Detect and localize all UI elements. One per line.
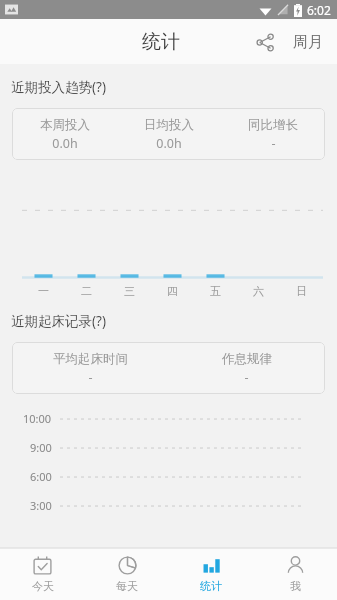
staticText: 六: [253, 284, 264, 298]
staticText: 平均起床时间: [53, 351, 128, 367]
staticText: 二: [81, 284, 92, 298]
staticText: 6:00: [30, 469, 52, 484]
staticText: 同比增长: [248, 117, 298, 133]
staticText: 三: [124, 284, 135, 298]
staticText: -: [271, 135, 276, 152]
staticText: -: [88, 369, 93, 386]
staticText: 本周投入: [40, 117, 90, 133]
button[interactable]: Share: [247, 24, 283, 60]
staticText: 9:00: [30, 440, 52, 455]
staticText: 每天: [116, 579, 138, 593]
button[interactable]: 统计: [169, 548, 253, 600]
staticText: 作息规律: [222, 351, 272, 367]
staticText: 6:02: [307, 2, 331, 18]
staticText: 0.0h: [156, 135, 182, 152]
button[interactable]: 本周投入: [12, 108, 325, 160]
staticText: 0.0h: [52, 135, 78, 152]
staticText: 五: [210, 284, 221, 298]
button[interactable]: 今天: [0, 548, 85, 600]
staticText: 四: [167, 284, 178, 298]
button[interactable]: 周月: [287, 25, 329, 60]
staticText: 10:00: [23, 411, 52, 426]
staticText: -: [244, 369, 249, 386]
staticText: 统计: [200, 579, 222, 593]
button[interactable]: 每天: [85, 548, 169, 600]
staticText: 近期起床记录(?): [11, 312, 106, 330]
staticText: 3:00: [30, 498, 52, 513]
button[interactable]: 我: [253, 548, 337, 600]
staticText: 我: [290, 579, 301, 593]
staticText: 近期投入趋势(?): [11, 78, 106, 96]
staticText: 周月: [293, 33, 323, 52]
staticText: 统计: [142, 30, 180, 54]
staticText: 一: [38, 284, 49, 298]
staticText: 今天: [32, 579, 54, 593]
staticText: 日: [296, 284, 307, 298]
button[interactable]: 平均起床时间: [12, 342, 325, 394]
staticText: 日均投入: [144, 117, 194, 133]
